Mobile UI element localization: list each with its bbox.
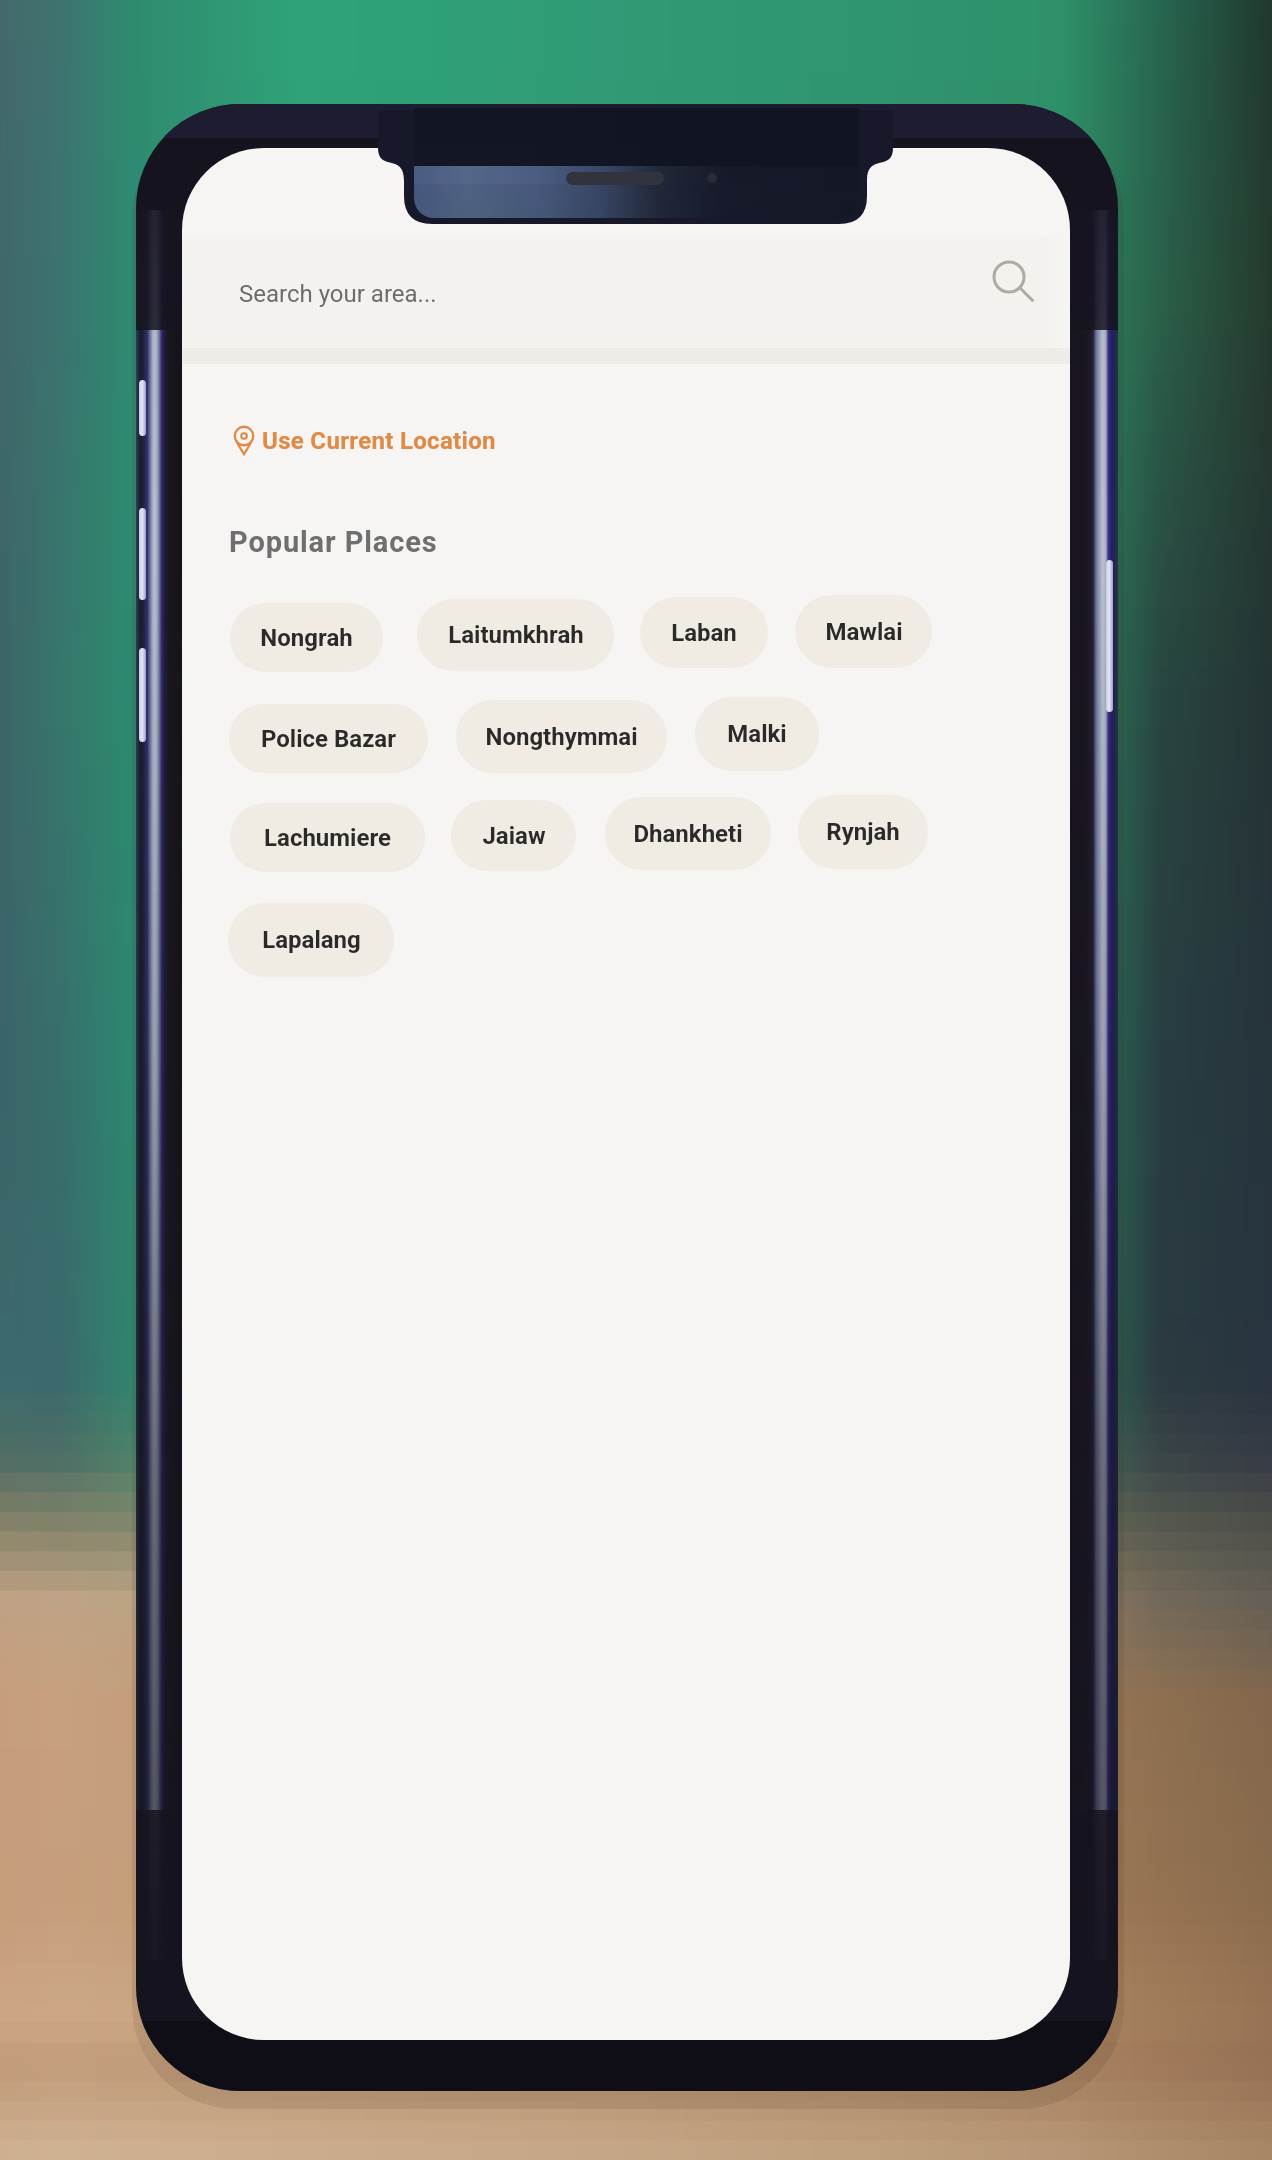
staticText: Use Current Location: [262, 427, 496, 455]
staticText: Nongrah: [260, 624, 353, 652]
button[interactable]: Use Current Location: [228, 424, 496, 460]
button[interactable]: Police Bazar: [229, 704, 428, 773]
button[interactable]: Laitumkhrah: [417, 599, 614, 671]
button[interactable]: Jaiaw: [451, 800, 576, 871]
staticText: Nongthymmai: [485, 723, 638, 751]
staticText: Laban: [671, 619, 737, 647]
button[interactable]: Nongthymmai: [456, 700, 667, 773]
staticText: Mawlai: [825, 618, 903, 646]
staticText: Police Bazar: [261, 725, 396, 753]
staticText: Lapalang: [262, 926, 361, 954]
staticText: Lachumiere: [264, 824, 391, 852]
staticText: Jaiaw: [482, 822, 546, 850]
button[interactable]: Laban: [640, 597, 768, 668]
button[interactable]: Rynjah: [798, 795, 928, 869]
staticText: Malki: [727, 720, 787, 748]
staticText: Popular Places: [229, 525, 438, 559]
button[interactable]: Search: [984, 252, 1044, 314]
staticText: Dhankheti: [633, 820, 743, 848]
button[interactable]: Lapalang: [228, 903, 394, 977]
staticText: Rynjah: [826, 818, 900, 846]
button[interactable]: Search your area...: [182, 238, 1070, 348]
button[interactable]: Mawlai: [795, 595, 932, 668]
button[interactable]: Nongrah: [230, 603, 383, 672]
button[interactable]: Malki: [695, 697, 819, 771]
staticText: Search your area...: [239, 280, 437, 308]
button[interactable]: Dhankheti: [605, 797, 771, 870]
staticText: Laitumkhrah: [448, 621, 584, 649]
button[interactable]: Lachumiere: [230, 803, 425, 872]
